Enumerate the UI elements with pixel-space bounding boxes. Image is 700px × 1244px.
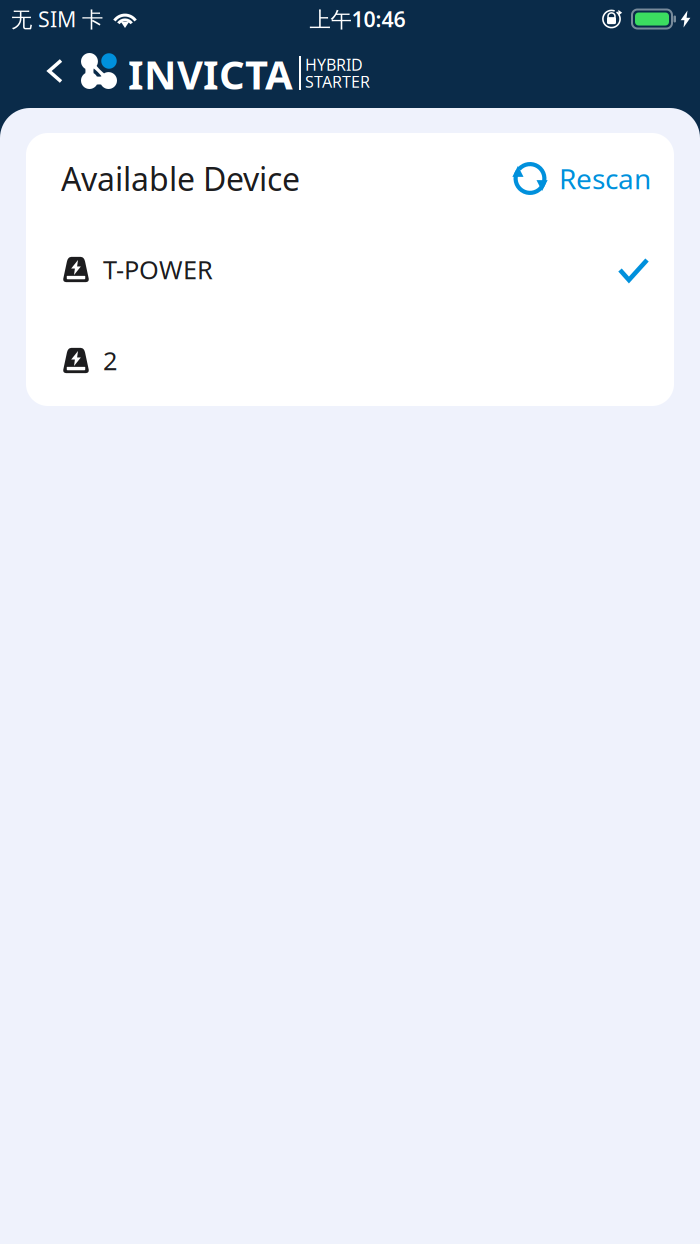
button[interactable]: 2 bbox=[26, 315, 674, 406]
staticText: 2 bbox=[103, 344, 117, 377]
button[interactable]: Rescan bbox=[512, 160, 651, 197]
staticText: STARTER bbox=[305, 71, 370, 92]
staticText: 无 SIM 卡 bbox=[11, 5, 103, 33]
button[interactable]: Back bbox=[0, 53, 79, 98]
staticText: 上午10:46 bbox=[309, 5, 405, 33]
staticText: T-POWER bbox=[103, 253, 213, 286]
staticText: HYBRID bbox=[305, 54, 363, 75]
staticText: Rescan bbox=[559, 160, 651, 197]
button[interactable]: T-POWER bbox=[26, 224, 674, 315]
staticText: INVICTA bbox=[128, 47, 293, 100]
staticText: Available Device bbox=[61, 157, 300, 200]
